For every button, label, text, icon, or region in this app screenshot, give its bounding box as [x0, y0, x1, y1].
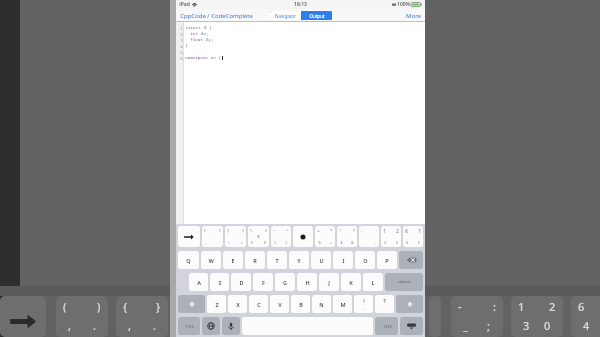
- staticText: C: [285, 241, 288, 245]
- staticText: ?: [353, 228, 355, 234]
- button[interactable]: U: [311, 251, 331, 269]
- staticText: 3: [180, 38, 183, 43]
- button[interactable]: (: [202, 226, 223, 247]
- staticText: -: [458, 299, 462, 314]
- staticText: 6: [578, 299, 585, 314]
- staticText: %: [318, 241, 321, 245]
- button[interactable]: Backspace: [399, 251, 423, 269]
- staticText: 0: [544, 318, 551, 333]
- button[interactable]: K: [341, 273, 361, 291]
- button[interactable]: G: [275, 273, 295, 291]
- button[interactable]: I: [333, 251, 353, 269]
- button[interactable]: Navigator: [270, 11, 301, 20]
- staticText: ,: [128, 318, 132, 333]
- button[interactable]: L: [363, 273, 383, 291]
- button[interactable]: Shift: [178, 295, 205, 313]
- button[interactable]: return: [385, 273, 423, 291]
- staticText: H: [305, 279, 310, 286]
- button[interactable]: .?123: [375, 317, 398, 335]
- staticText: _: [362, 241, 364, 245]
- button[interactable]: R: [245, 251, 265, 269]
- button[interactable]: N: [312, 295, 331, 313]
- staticText: !: [363, 298, 365, 305]
- staticText: /: [265, 228, 267, 234]
- staticText: int: [190, 31, 198, 37]
- staticText: 3: [384, 241, 386, 245]
- button[interactable]: +: [315, 226, 335, 247]
- staticText: S: [218, 279, 222, 286]
- button[interactable]: M: [333, 295, 352, 313]
- staticText: 0: [396, 241, 398, 245]
- button[interactable]: P: [377, 251, 397, 269]
- staticText: ~: [273, 228, 276, 234]
- staticText: U: [319, 257, 324, 264]
- button[interactable]: Shift: [396, 295, 423, 313]
- button[interactable]: J: [319, 273, 339, 291]
- staticText: N: [319, 301, 324, 308]
- button[interactable]: D: [231, 273, 251, 291]
- staticText: *: [330, 228, 333, 234]
- button[interactable]: Z: [207, 295, 226, 313]
- staticText: E: [231, 257, 235, 264]
- staticText: struct: [185, 25, 201, 31]
- button[interactable]: Dictate: [222, 317, 240, 335]
- button[interactable]: 1: [381, 226, 401, 247]
- button[interactable]: T: [267, 251, 287, 269]
- button[interactable]: Hide keyboard: [400, 317, 423, 335]
- staticText: T: [275, 257, 279, 264]
- button[interactable]: Symbols: [293, 226, 313, 247]
- staticText: ,: [68, 318, 72, 333]
- staticText: ^: [286, 228, 289, 234]
- staticText: >: [241, 241, 243, 245]
- staticText: 7: [418, 228, 421, 234]
- staticText: Z: [215, 301, 219, 308]
- staticText: ,: [205, 241, 206, 245]
- button[interactable]: \: [248, 226, 269, 247]
- staticText: X: [236, 301, 240, 308]
- button[interactable]: V: [270, 295, 289, 313]
- button[interactable]: Y: [289, 251, 309, 269]
- button[interactable]: .?123: [178, 317, 200, 335]
- button[interactable]: C: [249, 295, 268, 313]
- staticText: nn {: [208, 55, 221, 61]
- button[interactable]: H: [297, 273, 317, 291]
- staticText: namespace: [185, 55, 208, 61]
- staticText: 4: [583, 318, 590, 333]
- button[interactable]: Tab: [178, 226, 200, 247]
- staticText: ): [97, 299, 101, 314]
- staticText: .?123: [382, 324, 392, 329]
- staticText: Navigator: [275, 13, 296, 19]
- button[interactable]: O: [355, 251, 375, 269]
- button[interactable]: A: [189, 273, 208, 291]
- staticText: -: [361, 228, 363, 234]
- button[interactable]: !: [354, 295, 373, 313]
- button[interactable]: Q: [178, 251, 199, 269]
- button[interactable]: {: [225, 226, 246, 247]
- button[interactable]: W: [201, 251, 221, 269]
- button[interactable]: 6: [403, 226, 423, 247]
- button[interactable]: -: [359, 226, 379, 247]
- button[interactable]: ~: [271, 226, 291, 247]
- staticText: 18:13: [294, 1, 307, 8]
- button[interactable]: B: [291, 295, 310, 313]
- button[interactable]: F: [253, 273, 273, 291]
- button[interactable]: S: [210, 273, 229, 291]
- button[interactable]: ?: [375, 295, 394, 313]
- button[interactable]: Output: [301, 11, 332, 20]
- button[interactable]: Change keyboard: [202, 317, 220, 335]
- staticText: A {: [201, 25, 212, 31]
- staticText: =: [330, 241, 332, 245]
- staticText: 3: [523, 318, 530, 333]
- staticText: Ay;: [203, 37, 214, 43]
- staticText: M: [340, 301, 346, 308]
- button[interactable]: E: [223, 251, 243, 269]
- staticText: 1: [518, 299, 525, 314]
- button[interactable]: More: [406, 12, 421, 20]
- button[interactable]: CppCode / CodeComplete: [180, 12, 253, 20]
- staticText: #: [340, 241, 343, 245]
- staticText: Q: [186, 257, 191, 264]
- staticText: ;: [375, 241, 376, 245]
- button[interactable]: !: [337, 226, 357, 247]
- button[interactable]: X: [228, 295, 247, 313]
